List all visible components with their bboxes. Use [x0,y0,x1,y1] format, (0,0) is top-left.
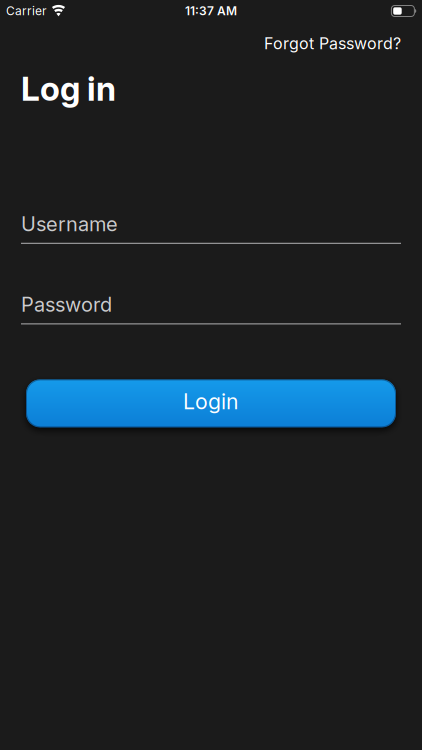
staticText: 11:37 AM [185,4,237,18]
staticText: Login [183,389,239,414]
button[interactable]: Password [21,293,401,324]
button[interactable]: Username [21,212,401,244]
staticText: Forgot Password? [264,34,401,53]
button[interactable]: Forgot Password? [264,34,401,53]
staticText: Log in [21,69,116,108]
staticText: Password [21,293,112,316]
button[interactable]: Login [26,379,396,427]
staticText: Username [21,212,118,236]
staticText: Carrier [6,4,47,18]
